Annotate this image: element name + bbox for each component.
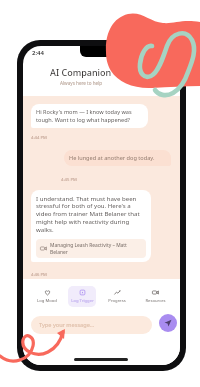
staticText: 4:45 PM	[61, 177, 77, 183]
staticText: 4:46 PM	[31, 272, 47, 278]
button[interactable]: Managing Leash Reactivity – Matt Belaner	[36, 239, 146, 258]
button[interactable]: I understand. That must have been stress…	[31, 190, 151, 262]
button[interactable]: Send message	[159, 314, 177, 332]
staticText: Hi Rocky's mom — I know today was tough.…	[36, 108, 143, 124]
staticText: Progress	[108, 298, 126, 304]
button[interactable]: Type your message...	[31, 316, 152, 334]
button[interactable]: Hi Rocky's mom — I know today was tough.…	[31, 104, 148, 128]
button[interactable]: Log Mood	[33, 286, 61, 307]
staticText: Log Mood	[37, 298, 57, 304]
staticText: 4:44 PM	[31, 135, 47, 141]
button[interactable]: Resources	[141, 286, 169, 307]
button[interactable]: Progress	[103, 286, 131, 307]
staticText: Type your message...	[39, 321, 95, 329]
staticText: AI Companion	[50, 66, 112, 78]
staticText: He lunged at another dog today.	[69, 154, 155, 162]
staticText: Always here to help	[60, 80, 103, 86]
staticText: Resources	[145, 298, 166, 304]
button[interactable]: He lunged at another dog today.	[64, 150, 171, 166]
button[interactable]: Log Trigger	[68, 286, 96, 307]
staticText: Log Trigger	[71, 298, 94, 304]
staticText: Managing Leash Reactivity – Matt Belaner	[50, 242, 142, 255]
staticText: 2:44	[32, 49, 44, 57]
staticText: I understand. That must have been stress…	[36, 194, 146, 234]
